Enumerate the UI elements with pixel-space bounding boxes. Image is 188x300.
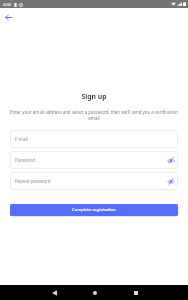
button[interactable]: Password <box>10 151 178 169</box>
button[interactable]: Home <box>89 287 101 299</box>
staticText: Complete registration <box>72 207 116 213</box>
button[interactable]: Complete registration <box>10 204 178 216</box>
staticText: 4:02 <box>3 2 11 7</box>
button[interactable]: Toggle password visibility <box>165 175 176 186</box>
button[interactable]: Recents <box>130 287 142 299</box>
button[interactable]: E-mail <box>10 130 178 148</box>
staticText: Sign up <box>0 92 188 101</box>
staticText: E-mail <box>15 136 28 142</box>
button[interactable]: Repeat password <box>10 172 178 190</box>
button[interactable]: Toggle password visibility <box>165 154 176 165</box>
staticText: Enter your email address and select a pa… <box>10 109 178 121</box>
button[interactable]: Back <box>1 10 15 24</box>
staticText: Password <box>15 157 35 163</box>
button[interactable]: Back <box>48 287 60 299</box>
staticText: Repeat password <box>15 178 51 184</box>
